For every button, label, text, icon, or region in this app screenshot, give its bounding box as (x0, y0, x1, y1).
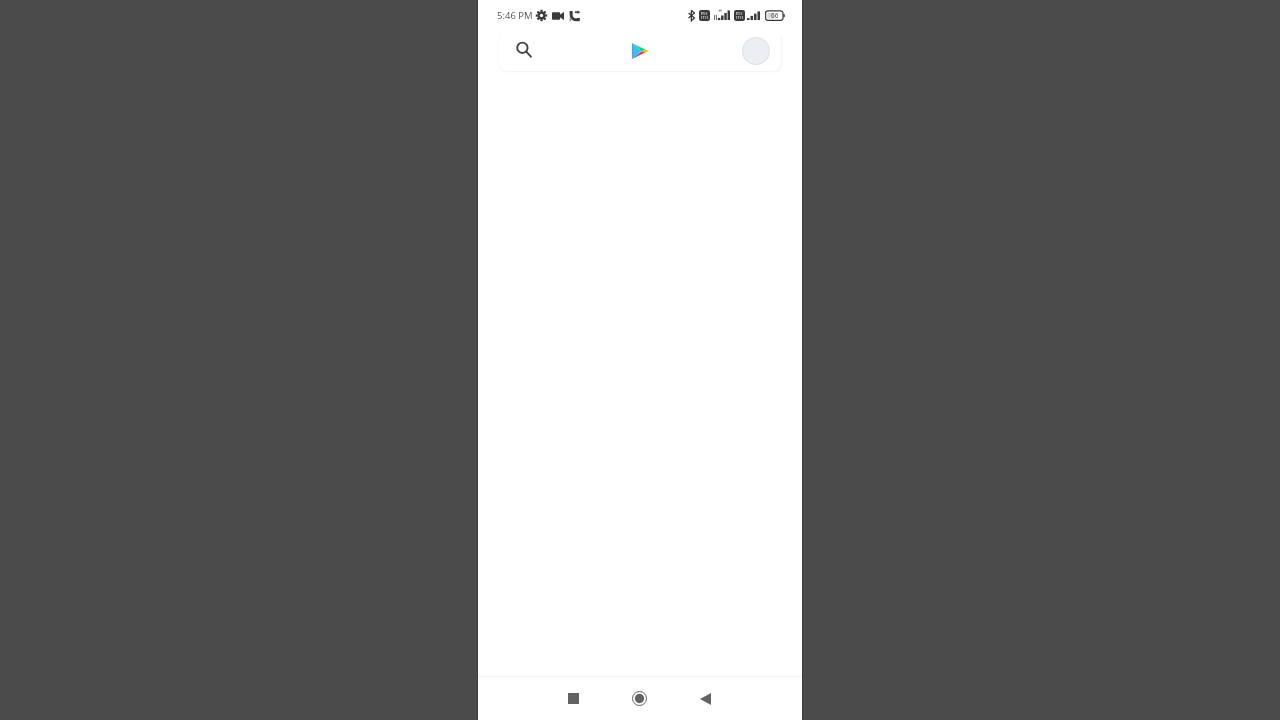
button[interactable]: Home (606, 677, 672, 720)
button[interactable]: Recent apps (540, 677, 606, 720)
button[interactable]: Account (742, 37, 770, 65)
button[interactable]: Back (672, 677, 738, 720)
staticText: 5:46 PM (497, 9, 533, 22)
other: Google Play (632, 43, 648, 59)
button[interactable]: Search (499, 31, 781, 71)
staticText: 66 (771, 11, 779, 20)
button[interactable]: Search (508, 35, 540, 67)
